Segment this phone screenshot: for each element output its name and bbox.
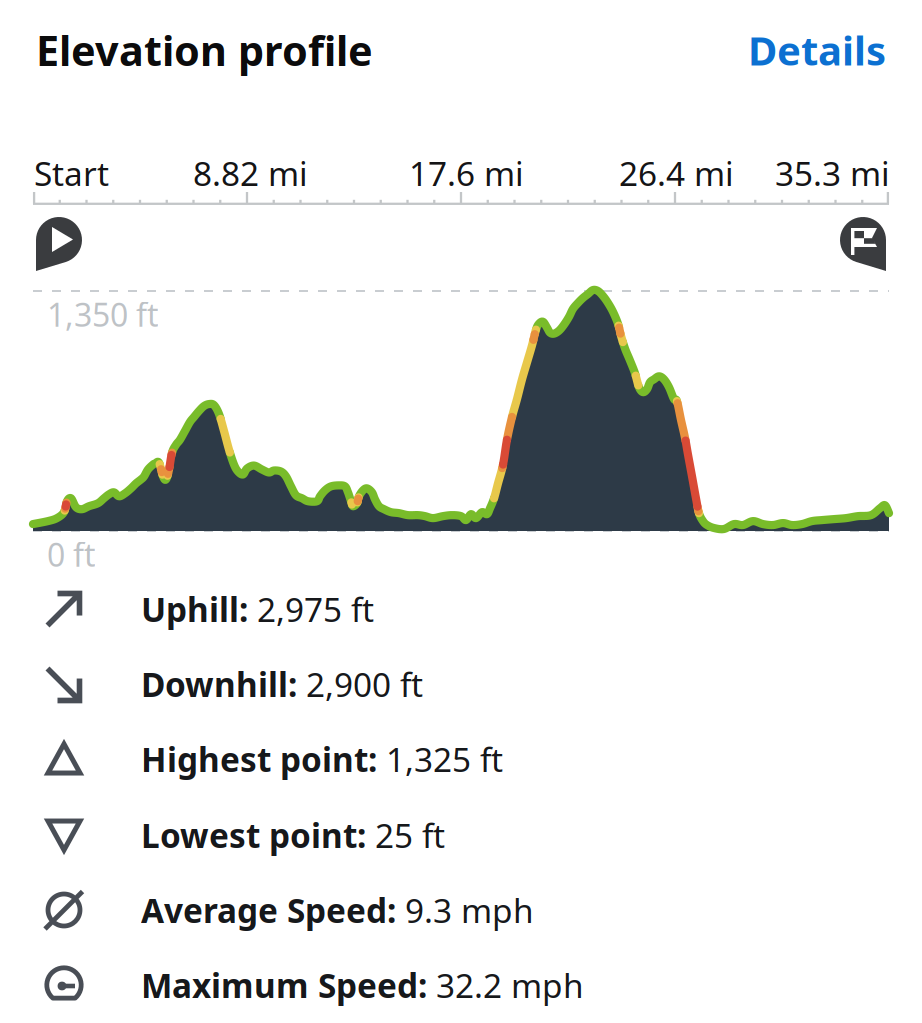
staticText: 9.3 mph	[396, 888, 534, 932]
staticText: 2,975 ft	[248, 587, 374, 631]
button[interactable]: Details	[748, 22, 886, 78]
staticText: Highest point:	[141, 737, 377, 781]
staticText: Elevation profile	[36, 23, 373, 77]
staticText: 2,900 ft	[297, 662, 423, 706]
button[interactable]: Downhill:	[0, 646, 922, 722]
button[interactable]: Maximum Speed:	[0, 947, 922, 1023]
staticText: Lowest point:	[141, 813, 366, 857]
staticText: 25 ft	[366, 813, 445, 857]
staticText: Uphill:	[141, 587, 248, 631]
button[interactable]: Uphill:	[0, 571, 922, 647]
staticText: Average Speed:	[141, 888, 396, 932]
staticText: 1,325 ft	[377, 737, 503, 781]
staticText: 0 ft	[47, 533, 96, 575]
staticText: Details	[748, 23, 886, 76]
staticText: 35.3 mi	[775, 151, 890, 195]
staticText: 26.4 mi	[619, 151, 734, 195]
staticText: Maximum Speed:	[141, 963, 427, 1007]
staticText: 32.2 mph	[427, 963, 584, 1007]
staticText: Downhill:	[141, 662, 297, 706]
button[interactable]: Highest point:	[0, 721, 922, 797]
staticText: 17.6 mi	[409, 151, 524, 195]
button[interactable]: Lowest point:	[0, 797, 922, 873]
button[interactable]: Average Speed:	[0, 872, 922, 948]
staticText: 1,350 ft	[47, 293, 159, 335]
staticText: 8.82 mi	[193, 151, 308, 195]
staticText: Start	[34, 151, 109, 195]
